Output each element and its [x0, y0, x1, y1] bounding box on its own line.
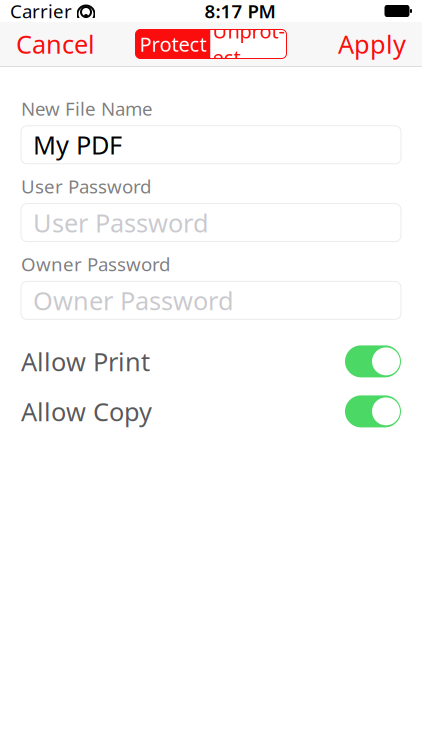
- staticText: User Password: [33, 206, 209, 239]
- staticText: My PDF: [33, 128, 122, 162]
- staticText: Allow Print: [21, 344, 150, 378]
- staticText: Protect: [139, 31, 206, 57]
- button[interactable]: Unprotect: [210, 29, 286, 58]
- staticText: Cancel: [16, 27, 95, 61]
- button[interactable]: Allow Copy: [21, 389, 401, 433]
- staticText: User Password: [21, 174, 151, 199]
- button[interactable]: Apply: [326, 22, 418, 66]
- staticText: New File Name: [21, 96, 153, 121]
- button[interactable]: Allow Print: [21, 339, 401, 383]
- staticText: Owner Password: [21, 252, 170, 276]
- button[interactable]: Cancel: [4, 22, 107, 66]
- staticText: 8:17 PM: [204, 0, 275, 23]
- staticText: Apply: [338, 27, 406, 61]
- staticText: Allow Copy: [21, 394, 152, 428]
- staticText: Carrier: [10, 0, 72, 23]
- button[interactable]: Protect: [135, 29, 210, 58]
- staticText: Unprotect: [212, 17, 284, 70]
- staticText: Owner Password: [33, 283, 234, 317]
